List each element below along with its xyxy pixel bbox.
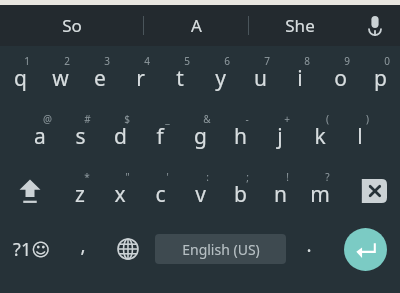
staticText: English (US) — [182, 240, 260, 259]
staticText: 5 — [184, 54, 190, 68]
staticText: , — [80, 232, 86, 258]
staticText: 4 — [144, 54, 150, 68]
staticText: m — [310, 180, 330, 209]
staticText: 3 — [104, 54, 110, 68]
staticText: s — [75, 122, 86, 151]
staticText: " — [125, 170, 130, 184]
button[interactable]: Voice input — [350, 5, 400, 46]
button[interactable]: Backspace — [340, 162, 400, 220]
staticText: She — [285, 14, 315, 37]
staticText: @ — [43, 112, 52, 126]
button[interactable]: : — [180, 162, 220, 220]
staticText: r — [136, 64, 145, 93]
staticText: * — [84, 170, 90, 184]
button[interactable]: 7 — [240, 46, 280, 104]
staticText: c — [155, 180, 166, 209]
staticText: 8 — [304, 54, 310, 68]
staticText: o — [334, 64, 347, 93]
button[interactable]: Change keyboard language — [104, 220, 152, 278]
staticText: y — [215, 64, 226, 93]
button[interactable]: ( — [300, 104, 340, 162]
button[interactable]: 8 — [280, 46, 320, 104]
staticText: _ — [165, 112, 170, 126]
button[interactable]: ) — [340, 104, 380, 162]
button[interactable]: ! — [260, 162, 300, 220]
button[interactable]: 5 — [160, 46, 200, 104]
staticText: u — [254, 64, 267, 93]
button[interactable]: 0 — [360, 46, 400, 104]
staticText: 2 — [64, 54, 70, 68]
button[interactable]: + — [260, 104, 300, 162]
button[interactable]: & — [180, 104, 220, 162]
staticText: A — [191, 14, 202, 37]
staticText: & — [203, 112, 211, 126]
staticText: . — [306, 232, 312, 258]
staticText: a — [34, 122, 46, 151]
staticText: p — [374, 64, 387, 93]
staticText: i — [297, 64, 303, 93]
staticText: ? — [325, 170, 330, 184]
staticText: ! — [286, 170, 289, 184]
button[interactable]: @ — [20, 104, 60, 162]
button[interactable]: English (US) — [155, 234, 286, 264]
staticText: b — [234, 180, 247, 209]
button[interactable]: 1 — [0, 46, 40, 104]
staticText: v — [195, 180, 206, 209]
staticText: z — [75, 180, 85, 209]
button[interactable]: , — [62, 220, 104, 278]
staticText: j — [277, 122, 283, 151]
button[interactable]: So — [0, 5, 143, 46]
button[interactable]: ' — [140, 162, 180, 220]
button[interactable]: Enter — [330, 220, 400, 278]
button[interactable]: # — [60, 104, 100, 162]
button[interactable]: 6 — [200, 46, 240, 104]
button[interactable]: * — [60, 162, 100, 220]
staticText: t — [176, 64, 184, 93]
button[interactable]: 2 — [40, 46, 80, 104]
staticText: n — [274, 180, 287, 209]
button[interactable]: She — [249, 5, 350, 46]
staticText: 9 — [344, 54, 350, 68]
staticText: ) — [366, 112, 369, 126]
staticText: - — [245, 112, 249, 126]
staticText: h — [234, 122, 247, 151]
staticText: 6 — [224, 54, 230, 68]
button[interactable]: 3 — [80, 46, 120, 104]
staticText: : — [206, 170, 209, 184]
staticText: ; — [246, 170, 249, 184]
button[interactable]: 4 — [120, 46, 160, 104]
staticText: f — [156, 122, 164, 151]
button[interactable]: Shift — [0, 162, 60, 220]
staticText: l — [357, 122, 363, 151]
staticText: 7 — [264, 54, 270, 68]
staticText: ?1☺ — [13, 237, 50, 262]
staticText: e — [94, 64, 106, 93]
button[interactable]: _ — [140, 104, 180, 162]
staticText: w — [52, 64, 69, 93]
button[interactable]: $ — [100, 104, 140, 162]
staticText: q — [14, 64, 27, 93]
button[interactable]: ; — [220, 162, 260, 220]
staticText: k — [314, 122, 326, 151]
staticText: ' — [166, 170, 169, 184]
button[interactable]: ? — [300, 162, 340, 220]
staticText: So — [62, 14, 82, 37]
button[interactable]: - — [220, 104, 260, 162]
staticText: # — [84, 112, 91, 126]
button[interactable]: ?1☺ — [0, 220, 62, 278]
staticText: ( — [326, 112, 329, 126]
staticText: d — [114, 122, 127, 151]
button[interactable]: A — [144, 5, 248, 46]
staticText: x — [114, 180, 126, 209]
staticText: $ — [124, 112, 130, 126]
staticText: 0 — [384, 54, 390, 68]
staticText: g — [194, 122, 207, 151]
button[interactable]: . — [288, 220, 330, 278]
staticText: + — [284, 112, 290, 126]
button[interactable]: 9 — [320, 46, 360, 104]
staticText: 1 — [24, 54, 30, 68]
button[interactable]: " — [100, 162, 140, 220]
